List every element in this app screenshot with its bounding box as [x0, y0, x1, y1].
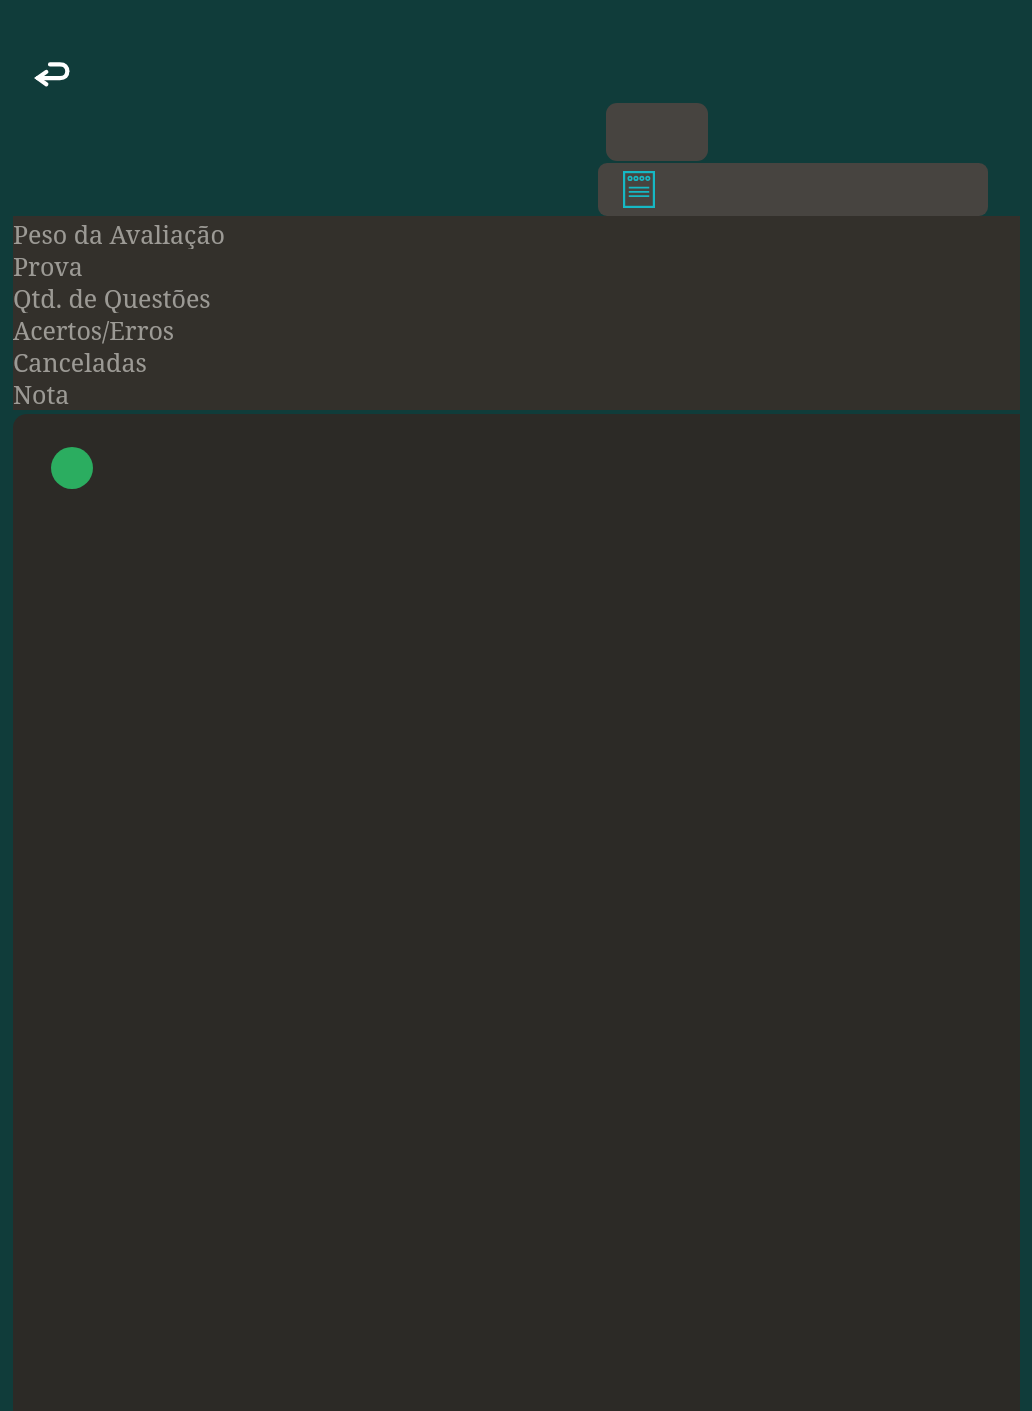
- staticText: Acertos/Erros: [13, 313, 175, 345]
- button[interactable]: Status: [51, 447, 93, 489]
- staticText: Peso da Avaliação: [13, 217, 225, 249]
- staticText: Qtd. de Questões: [13, 281, 211, 313]
- staticText: Prova: [13, 249, 83, 281]
- button[interactable]: Canceladas: [13, 345, 1020, 377]
- button[interactable]: Voltar: [24, 44, 86, 106]
- button[interactable]: Nota: [13, 377, 1020, 409]
- button[interactable]: Cartão: [606, 103, 708, 161]
- button[interactable]: Peso da Avaliação: [13, 217, 1020, 249]
- button[interactable]: Bloco de notas: [598, 163, 988, 216]
- button[interactable]: Acertos/Erros: [13, 313, 1020, 345]
- button[interactable]: Qtd. de Questões: [13, 281, 1020, 313]
- staticText: Canceladas: [13, 345, 147, 377]
- button[interactable]: Prova: [13, 249, 1020, 281]
- other: Bloco de notas: [623, 171, 655, 208]
- staticText: Nota: [13, 377, 70, 409]
